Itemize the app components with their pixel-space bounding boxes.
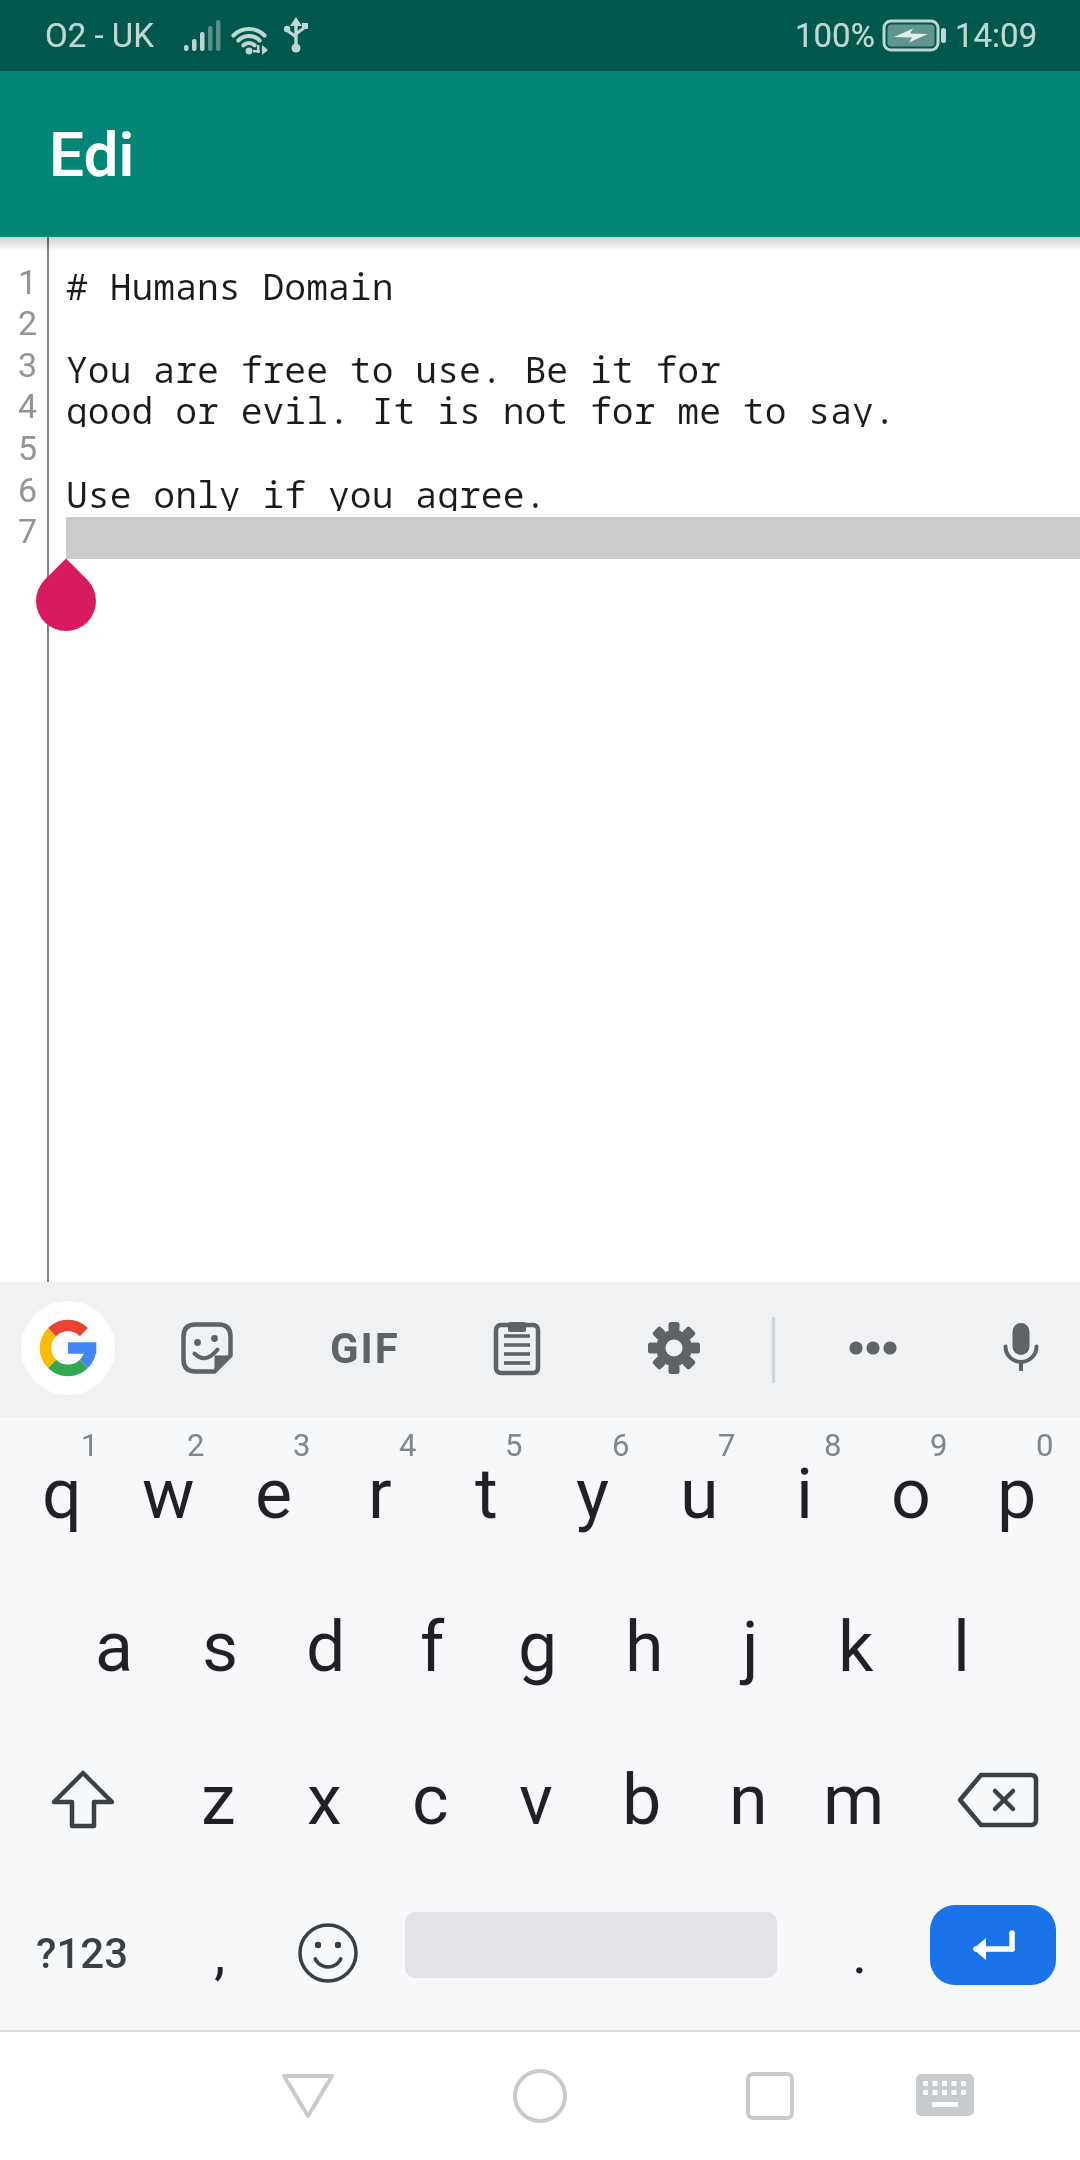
staticText: . <box>852 1919 868 1987</box>
staticText: l <box>953 1606 971 1688</box>
staticText: 4 <box>399 1427 417 1463</box>
button[interactable] <box>710 2032 830 2160</box>
staticText: GIF <box>330 1324 400 1373</box>
staticText: y <box>576 1453 610 1535</box>
button[interactable]: k <box>803 1570 909 1723</box>
staticText: 5 <box>18 428 38 468</box>
staticText: v <box>519 1759 553 1841</box>
button[interactable]: . <box>800 1876 920 2030</box>
button[interactable]: ?123 <box>0 1876 165 2030</box>
button[interactable] <box>838 1313 908 1383</box>
staticText: n <box>729 1759 768 1841</box>
staticText: o <box>891 1453 931 1535</box>
button[interactable] <box>930 1905 1056 1985</box>
staticText: 7 <box>718 1427 736 1463</box>
staticText: 1 <box>18 262 38 302</box>
staticText: u <box>680 1453 719 1535</box>
staticText: ?123 <box>36 1929 129 1978</box>
button[interactable]: 1 <box>0 237 1080 1282</box>
staticText: r <box>368 1453 392 1535</box>
button[interactable]: v <box>483 1723 589 1876</box>
button[interactable] <box>275 1876 380 2030</box>
staticText: 6 <box>612 1427 630 1463</box>
button[interactable] <box>639 1313 709 1383</box>
button[interactable] <box>480 2032 600 2160</box>
button[interactable]: r <box>327 1417 433 1570</box>
button[interactable]: a <box>61 1570 167 1723</box>
staticText: c <box>412 1759 449 1841</box>
button[interactable]: e <box>221 1417 327 1570</box>
button[interactable] <box>21 1301 115 1395</box>
button[interactable]: o <box>858 1417 964 1570</box>
staticText: 2 <box>187 1427 205 1463</box>
staticText: 3 <box>18 345 38 385</box>
staticText: s <box>202 1606 239 1688</box>
staticText: 1 <box>81 1427 99 1463</box>
button[interactable]: p <box>964 1417 1070 1570</box>
staticText: f <box>420 1606 445 1688</box>
staticText: i <box>796 1453 814 1535</box>
button[interactable]: f <box>379 1570 485 1723</box>
staticText: b <box>622 1759 662 1841</box>
staticText: h <box>625 1606 664 1688</box>
button[interactable]: s <box>167 1570 273 1723</box>
staticText: Use only if you agree. <box>66 469 547 511</box>
staticText: 9 <box>930 1427 948 1463</box>
button[interactable]: d <box>273 1570 379 1723</box>
staticText: 2 <box>18 303 38 343</box>
staticText: g <box>518 1606 558 1688</box>
button[interactable]: u <box>646 1417 752 1570</box>
button[interactable]: GIF <box>310 1313 420 1383</box>
staticText: 100% <box>795 16 875 55</box>
button[interactable]: l <box>909 1570 1015 1723</box>
staticText: , <box>214 1919 226 1987</box>
button[interactable]: x <box>271 1723 377 1876</box>
button[interactable]: c <box>377 1723 483 1876</box>
staticText: good or evil. It is not for me to say. <box>66 385 896 427</box>
button[interactable] <box>0 1723 165 1876</box>
staticText: w <box>142 1453 195 1535</box>
button[interactable] <box>885 2032 1005 2160</box>
button[interactable]: i <box>752 1417 858 1570</box>
button[interactable]: z <box>165 1723 271 1876</box>
button[interactable] <box>172 1313 242 1383</box>
staticText: t <box>475 1453 498 1535</box>
button[interactable] <box>915 1723 1080 1876</box>
button[interactable]: y <box>540 1417 646 1570</box>
staticText: 7 <box>18 511 38 551</box>
staticText: z <box>201 1759 236 1841</box>
button[interactable] <box>986 1313 1056 1383</box>
button[interactable]: n <box>695 1723 801 1876</box>
staticText: a <box>95 1606 134 1688</box>
staticText: d <box>306 1606 346 1688</box>
button[interactable]: t <box>433 1417 539 1570</box>
button[interactable]: h <box>591 1570 697 1723</box>
button[interactable]: w <box>115 1417 221 1570</box>
button[interactable]: g <box>485 1570 591 1723</box>
button[interactable]: m <box>801 1723 907 1876</box>
staticText: 4 <box>18 386 38 426</box>
staticText: # Humans Domain <box>66 261 394 303</box>
staticText: Edi <box>49 118 135 191</box>
staticText: p <box>997 1453 1037 1535</box>
button[interactable] <box>482 1313 552 1383</box>
button[interactable] <box>248 2032 368 2160</box>
staticText: O2 - UK <box>45 16 154 55</box>
staticText: 0 <box>1036 1427 1054 1463</box>
button[interactable]: b <box>589 1723 695 1876</box>
staticText: 8 <box>824 1427 842 1463</box>
staticText: 14:09 <box>955 16 1038 55</box>
button[interactable]: j <box>697 1570 803 1723</box>
staticText: 6 <box>18 470 38 510</box>
staticText: k <box>838 1606 874 1688</box>
button[interactable]: , <box>165 1876 275 2030</box>
staticText: You are free to use. Be it for <box>66 344 722 386</box>
button[interactable]: q <box>9 1417 115 1570</box>
staticText: q <box>42 1453 82 1535</box>
staticText: 5 <box>505 1427 523 1463</box>
staticText: e <box>255 1453 293 1535</box>
staticText: j <box>742 1606 759 1688</box>
staticText: 3 <box>293 1427 311 1463</box>
staticText: x <box>307 1759 342 1841</box>
